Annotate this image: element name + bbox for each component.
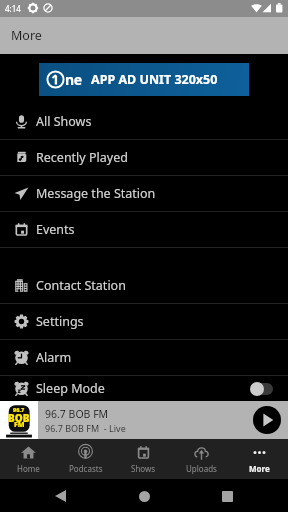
staticText: Uploads [186, 463, 217, 474]
staticText: Sleep Mode [36, 380, 105, 397]
staticText: Contact Station [36, 277, 126, 294]
staticText: More [11, 27, 42, 44]
staticText: 4:14 [5, 3, 21, 14]
staticText: Alarm [36, 349, 72, 366]
button[interactable]: Events [0, 212, 288, 247]
button[interactable]: Home [132, 484, 156, 508]
button[interactable]: Home [0, 439, 57, 479]
button[interactable]: Recents [215, 484, 239, 508]
staticText: All Shows [36, 113, 92, 130]
button[interactable]: Shows [114, 439, 172, 479]
staticText: Settings [36, 313, 84, 330]
staticText: Recently Played [36, 149, 128, 166]
staticText: Shows [131, 463, 156, 474]
button[interactable]: Back [48, 484, 72, 508]
button[interactable]: Contact Station [0, 268, 288, 303]
button[interactable]: Advertisement [39, 63, 249, 96]
staticText: BOB [8, 411, 30, 425]
staticText: More [249, 463, 270, 474]
staticText: 96.7 [13, 406, 25, 413]
button[interactable]: Alarm [0, 340, 288, 375]
button[interactable]: Message the Station [0, 176, 288, 211]
button[interactable]: 96.7 [0, 401, 288, 439]
button[interactable]: Uploads [172, 439, 230, 479]
staticText: 96.7 BOB FM - Live [45, 422, 126, 434]
staticText: Events [36, 221, 75, 238]
staticText: Message the Station [36, 185, 156, 202]
button[interactable]: Recently Played [0, 140, 288, 175]
button[interactable]: Settings [0, 304, 288, 339]
button[interactable]: Sleep Mode [0, 376, 288, 401]
staticText: ne [65, 70, 82, 89]
staticText: 96.7 BOB FM [45, 407, 109, 421]
button[interactable]: Podcasts [57, 439, 114, 479]
button[interactable]: Play [253, 406, 281, 434]
button[interactable]: All Shows [0, 104, 288, 139]
button[interactable]: More [230, 439, 288, 479]
staticText: Home [17, 463, 40, 474]
staticText: Podcasts [69, 463, 103, 474]
staticText: FM [14, 420, 25, 430]
staticText: APP AD UNIT 320x50 [91, 71, 218, 88]
